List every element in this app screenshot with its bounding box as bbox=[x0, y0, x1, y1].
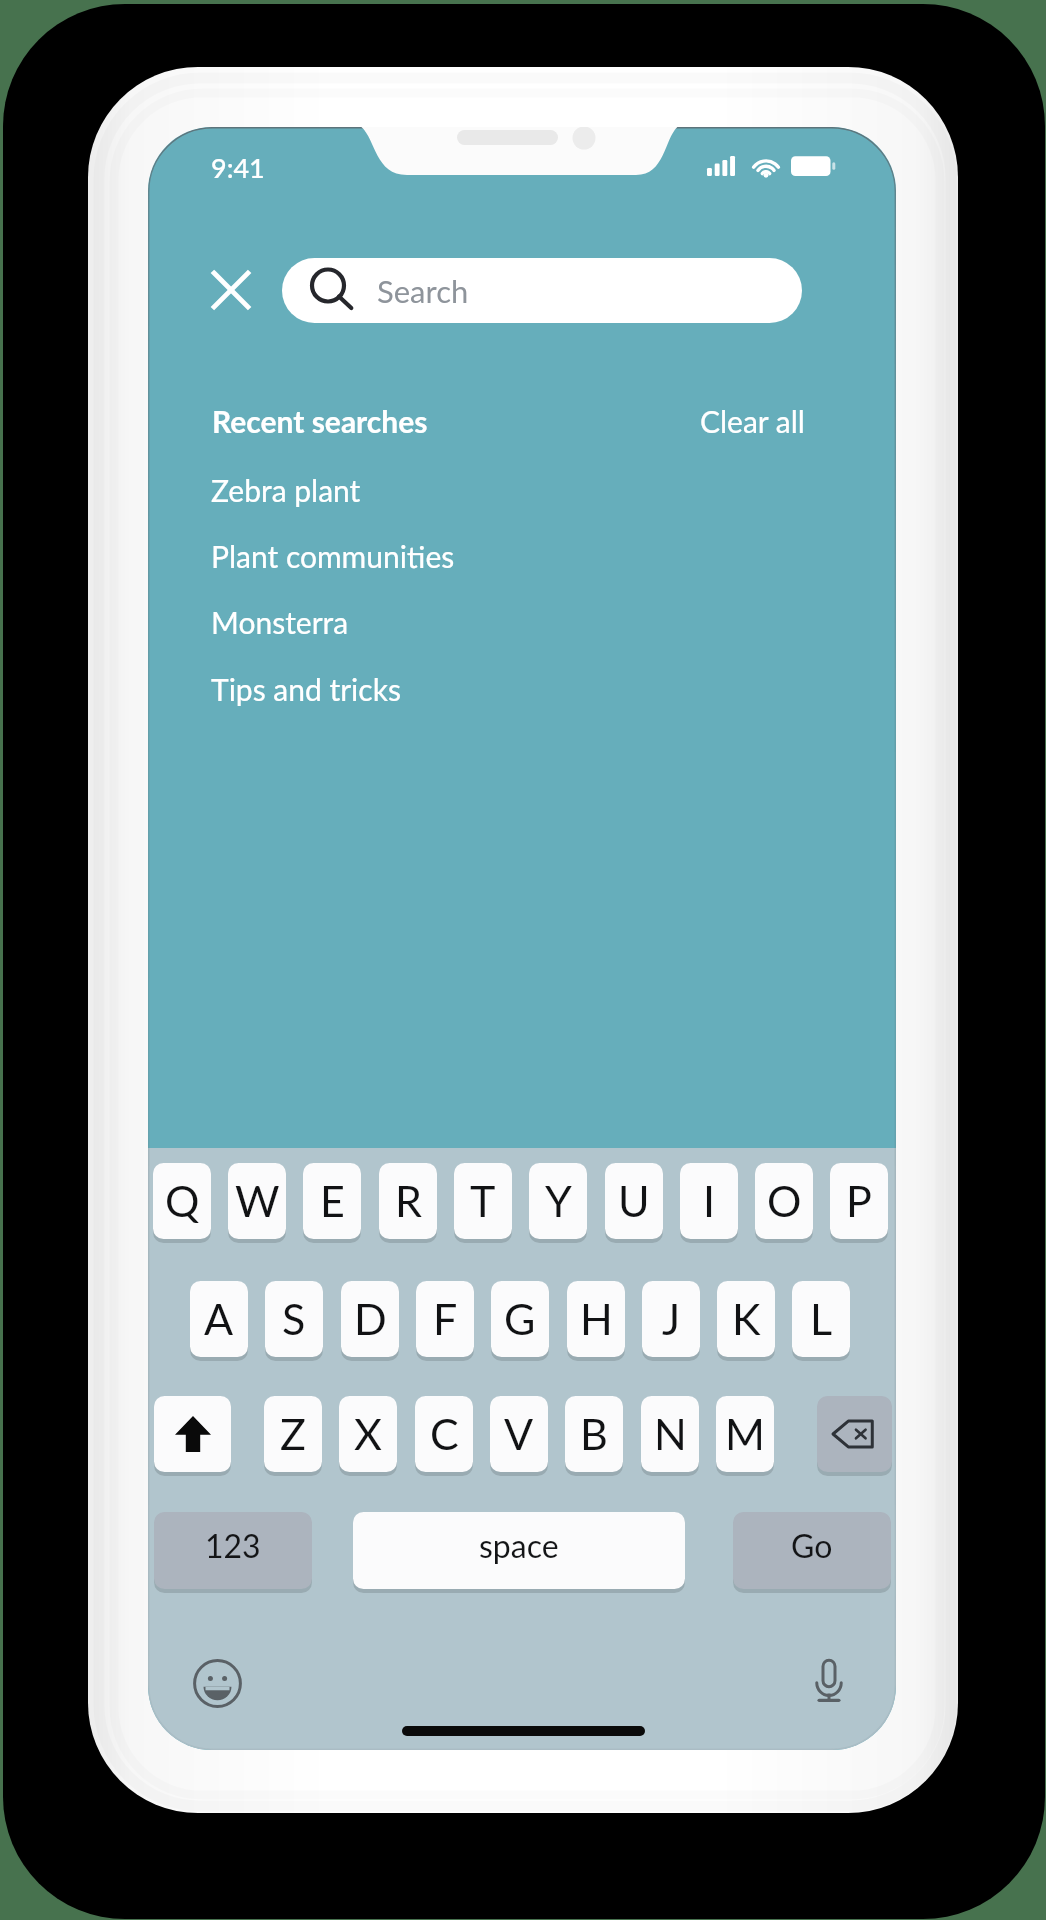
button[interactable]: I bbox=[680, 1163, 738, 1239]
staticText: G bbox=[504, 1293, 536, 1345]
staticText: O bbox=[767, 1175, 802, 1227]
button[interactable]: Q bbox=[153, 1163, 211, 1239]
staticText: Z bbox=[280, 1408, 306, 1460]
button[interactable]: A bbox=[190, 1281, 248, 1357]
button[interactable]: C bbox=[415, 1396, 473, 1472]
staticText: Monsterra bbox=[211, 604, 349, 640]
button[interactable]: D bbox=[341, 1281, 399, 1357]
staticText: P bbox=[846, 1175, 872, 1227]
button[interactable]: O bbox=[755, 1163, 813, 1239]
button[interactable]: Z bbox=[264, 1396, 322, 1472]
staticText: Recent searches bbox=[212, 403, 428, 439]
button[interactable]: K bbox=[717, 1281, 775, 1357]
button[interactable]: X bbox=[339, 1396, 397, 1472]
button[interactable]: F bbox=[416, 1281, 474, 1357]
staticText: H bbox=[580, 1293, 613, 1345]
button[interactable]: L bbox=[792, 1281, 850, 1357]
staticText: Go bbox=[791, 1526, 833, 1564]
button[interactable]: space bbox=[353, 1512, 685, 1589]
staticText: E bbox=[320, 1175, 345, 1227]
staticText: L bbox=[810, 1293, 833, 1345]
button[interactable]: S bbox=[265, 1281, 323, 1357]
staticText: K bbox=[732, 1293, 761, 1345]
staticText: D bbox=[354, 1293, 387, 1345]
staticText: C bbox=[430, 1408, 459, 1460]
button[interactable]: Shift bbox=[154, 1396, 231, 1472]
button[interactable]: T bbox=[454, 1163, 512, 1239]
staticText: S bbox=[282, 1293, 306, 1345]
staticText: Tips and tricks bbox=[211, 671, 401, 707]
staticText: U bbox=[618, 1175, 650, 1227]
button[interactable]: Y bbox=[529, 1163, 587, 1239]
button[interactable]: E bbox=[303, 1163, 361, 1239]
button[interactable]: N bbox=[641, 1396, 699, 1472]
button[interactable]: V bbox=[490, 1396, 548, 1472]
button[interactable]: Plant communities bbox=[148, 528, 896, 584]
staticText: M bbox=[725, 1408, 765, 1460]
staticText: J bbox=[662, 1293, 681, 1345]
button[interactable]: M bbox=[716, 1396, 774, 1472]
button[interactable]: P bbox=[830, 1163, 888, 1239]
staticText: R bbox=[395, 1175, 422, 1227]
staticText: space bbox=[479, 1526, 559, 1564]
staticText: V bbox=[504, 1408, 534, 1460]
button[interactable]: Close search bbox=[201, 260, 261, 320]
staticText: Search bbox=[377, 272, 469, 309]
staticText: B bbox=[580, 1408, 608, 1460]
staticText: N bbox=[654, 1408, 687, 1460]
button[interactable]: Backspace bbox=[817, 1396, 892, 1472]
staticText: Y bbox=[545, 1175, 572, 1227]
staticText: T bbox=[470, 1175, 496, 1227]
button[interactable]: R bbox=[379, 1163, 437, 1239]
staticText: Zebra plant bbox=[211, 472, 361, 508]
staticText: 123 bbox=[205, 1526, 261, 1564]
button[interactable]: Voice input bbox=[805, 1655, 853, 1703]
button[interactable]: Zebra plant bbox=[148, 462, 896, 518]
button[interactable]: B bbox=[565, 1396, 623, 1472]
button[interactable]: G bbox=[491, 1281, 549, 1357]
staticText: Clear all bbox=[700, 403, 805, 439]
button[interactable]: 123 bbox=[154, 1512, 312, 1589]
button[interactable]: Go bbox=[733, 1512, 891, 1589]
button[interactable]: J bbox=[642, 1281, 700, 1357]
staticText: Plant communities bbox=[211, 538, 455, 574]
button[interactable]: Emoji keyboard bbox=[192, 1658, 242, 1708]
button[interactable]: H bbox=[567, 1281, 625, 1357]
button[interactable]: Tips and tricks bbox=[148, 661, 896, 717]
staticText: W bbox=[235, 1175, 280, 1227]
button[interactable]: Search bbox=[282, 258, 802, 323]
staticText: A bbox=[204, 1293, 234, 1345]
button[interactable]: U bbox=[605, 1163, 663, 1239]
staticText: F bbox=[433, 1293, 458, 1345]
button[interactable]: W bbox=[228, 1163, 286, 1239]
staticText: X bbox=[354, 1408, 382, 1460]
staticText: I bbox=[703, 1175, 716, 1227]
staticText: Q bbox=[165, 1175, 200, 1227]
button[interactable]: Clear all bbox=[700, 403, 805, 439]
staticText: 9:41 bbox=[211, 151, 265, 183]
button[interactable]: Monsterra bbox=[148, 594, 896, 650]
